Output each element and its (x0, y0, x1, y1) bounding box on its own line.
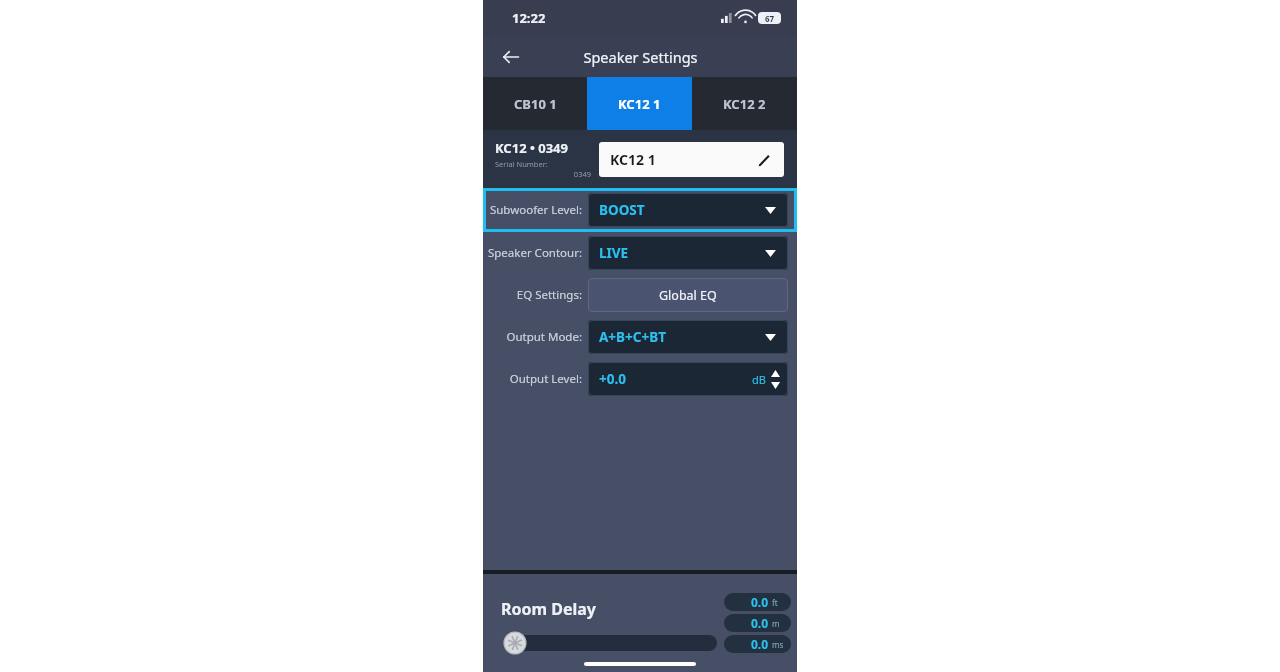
button[interactable]: Back (495, 41, 527, 73)
button[interactable]: KC12 2 (692, 77, 797, 130)
staticText: LIVE (599, 244, 629, 262)
staticText: 0.0 (751, 594, 769, 610)
button[interactable]: BOOST (588, 193, 788, 227)
staticText: BOOST (599, 201, 645, 219)
button[interactable]: 0.0 (724, 635, 791, 653)
staticText: CB10 1 (514, 95, 557, 113)
staticText: Speaker Settings (583, 47, 698, 67)
button[interactable]: Subwoofer Level: (483, 188, 797, 232)
button[interactable]: LIVE (588, 236, 788, 270)
button[interactable]: EQ Settings: (483, 274, 797, 316)
staticText: 0.0 (751, 615, 769, 631)
staticText: +0.0 (599, 370, 626, 388)
button[interactable]: KC12 1 (587, 77, 692, 130)
button[interactable]: Global EQ (588, 278, 788, 312)
staticText: m (772, 618, 780, 629)
staticText: 67 (765, 13, 775, 24)
staticText: Output Mode: (483, 329, 582, 345)
staticText: A+B+C+BT (599, 328, 666, 346)
button[interactable]: Speaker Contour: (483, 232, 797, 274)
staticText: dB (752, 372, 766, 387)
staticText: Serial Number: (495, 159, 548, 169)
staticText: ft (772, 597, 778, 608)
button[interactable]: Output Mode: (483, 316, 797, 358)
staticText: KC12 1 (618, 95, 661, 113)
staticText: KC12 2 (723, 95, 766, 113)
button[interactable]: Output Level: (483, 358, 797, 400)
staticText: Room Delay (501, 598, 597, 620)
button[interactable]: CB10 1 (483, 77, 587, 130)
staticText: Output Level: (483, 371, 582, 387)
button[interactable]: KC12 1 (599, 142, 784, 177)
staticText: Subwoofer Level: (483, 202, 582, 218)
button[interactable]: 0.0 (724, 614, 791, 632)
staticText: KC12 1 (610, 150, 656, 169)
staticText: 0.0 (751, 636, 769, 652)
button[interactable] (505, 635, 717, 651)
button[interactable]: 0.0 (724, 593, 791, 611)
staticText: Speaker Contour: (483, 245, 582, 261)
staticText: Global EQ (659, 287, 717, 304)
button[interactable]: +0.0 (588, 362, 788, 396)
staticText: KC12 • 0349 (495, 139, 568, 157)
staticText: EQ Settings: (483, 287, 582, 303)
button[interactable]: A+B+C+BT (588, 320, 788, 354)
staticText: ms (772, 639, 784, 650)
staticText: 12:22 (512, 9, 546, 27)
staticText: 0349 (495, 169, 591, 179)
